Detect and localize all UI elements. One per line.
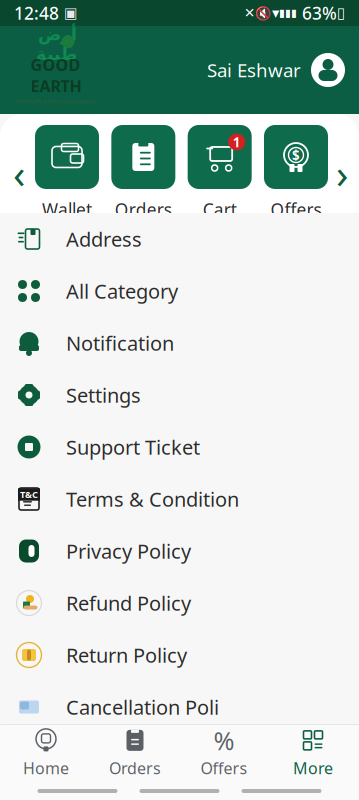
button[interactable]: T&C [0, 473, 359, 525]
button[interactable]: Settings [0, 369, 359, 421]
button[interactable]: Privacy Policy [0, 525, 359, 577]
staticText: ▮▮▮ [279, 7, 297, 19]
staticText: More [293, 757, 333, 779]
button[interactable]: Return Policy [0, 629, 359, 681]
button[interactable]: Address [0, 213, 359, 265]
staticText: 1 [233, 133, 241, 151]
staticText: Refund Policy [66, 590, 191, 616]
staticText: Cancellation Poli [66, 694, 219, 720]
button[interactable]: Refund Policy [0, 577, 359, 629]
button[interactable]: $ [263, 125, 329, 221]
button[interactable]: Orders [110, 125, 176, 221]
staticText: › [336, 146, 348, 199]
staticText: All Category [66, 278, 178, 304]
button[interactable]: More [268, 724, 357, 782]
staticText: ▯ [337, 5, 345, 21]
staticText: Orders [115, 198, 172, 221]
button[interactable]: % [179, 724, 268, 782]
button[interactable]: Notification [0, 317, 359, 369]
staticText: 63% [297, 1, 337, 24]
button[interactable]: Previous [4, 143, 34, 203]
staticText: ▣ [59, 5, 78, 21]
staticText: GOOD EARTH [30, 54, 81, 97]
staticText: Cart [203, 198, 237, 221]
staticText: Offers [200, 757, 247, 779]
staticText: Making life Good, growing regions [16, 98, 96, 105]
staticText: Address [66, 226, 142, 252]
staticText: T&C [20, 488, 38, 501]
button[interactable]: Next [329, 143, 355, 203]
staticText: ‹ [13, 146, 25, 199]
staticText: Sai Eshwar [207, 58, 301, 82]
staticText: Privacy Policy [66, 538, 191, 564]
staticText: Support Ticket [66, 434, 200, 460]
staticText: Terms & Condition [66, 486, 239, 512]
staticText: أرض طيبة [35, 24, 76, 64]
staticText: Settings [66, 382, 141, 408]
staticText: Orders [109, 757, 161, 779]
staticText: ▾ [272, 5, 279, 21]
button[interactable]: Cancellation Poli [0, 681, 359, 733]
staticText: 12:48 [14, 1, 59, 24]
button[interactable]: 1 [187, 125, 253, 221]
staticText: Notification [66, 330, 174, 356]
button[interactable]: Orders [90, 724, 179, 782]
button[interactable]: Sai Eshwar [207, 53, 345, 87]
staticText: $ [292, 146, 300, 164]
staticText: Offers [270, 198, 321, 221]
staticText: ✕🔇 [244, 5, 272, 21]
button[interactable]: Support Ticket [0, 421, 359, 473]
staticText: Return Policy [66, 642, 187, 668]
staticText: Wallet [42, 198, 92, 221]
button[interactable]: Wallet [34, 125, 100, 221]
staticText: Home [23, 757, 69, 779]
staticText: % [213, 724, 234, 757]
button[interactable]: All Category [0, 265, 359, 317]
button[interactable]: Home [1, 724, 90, 782]
